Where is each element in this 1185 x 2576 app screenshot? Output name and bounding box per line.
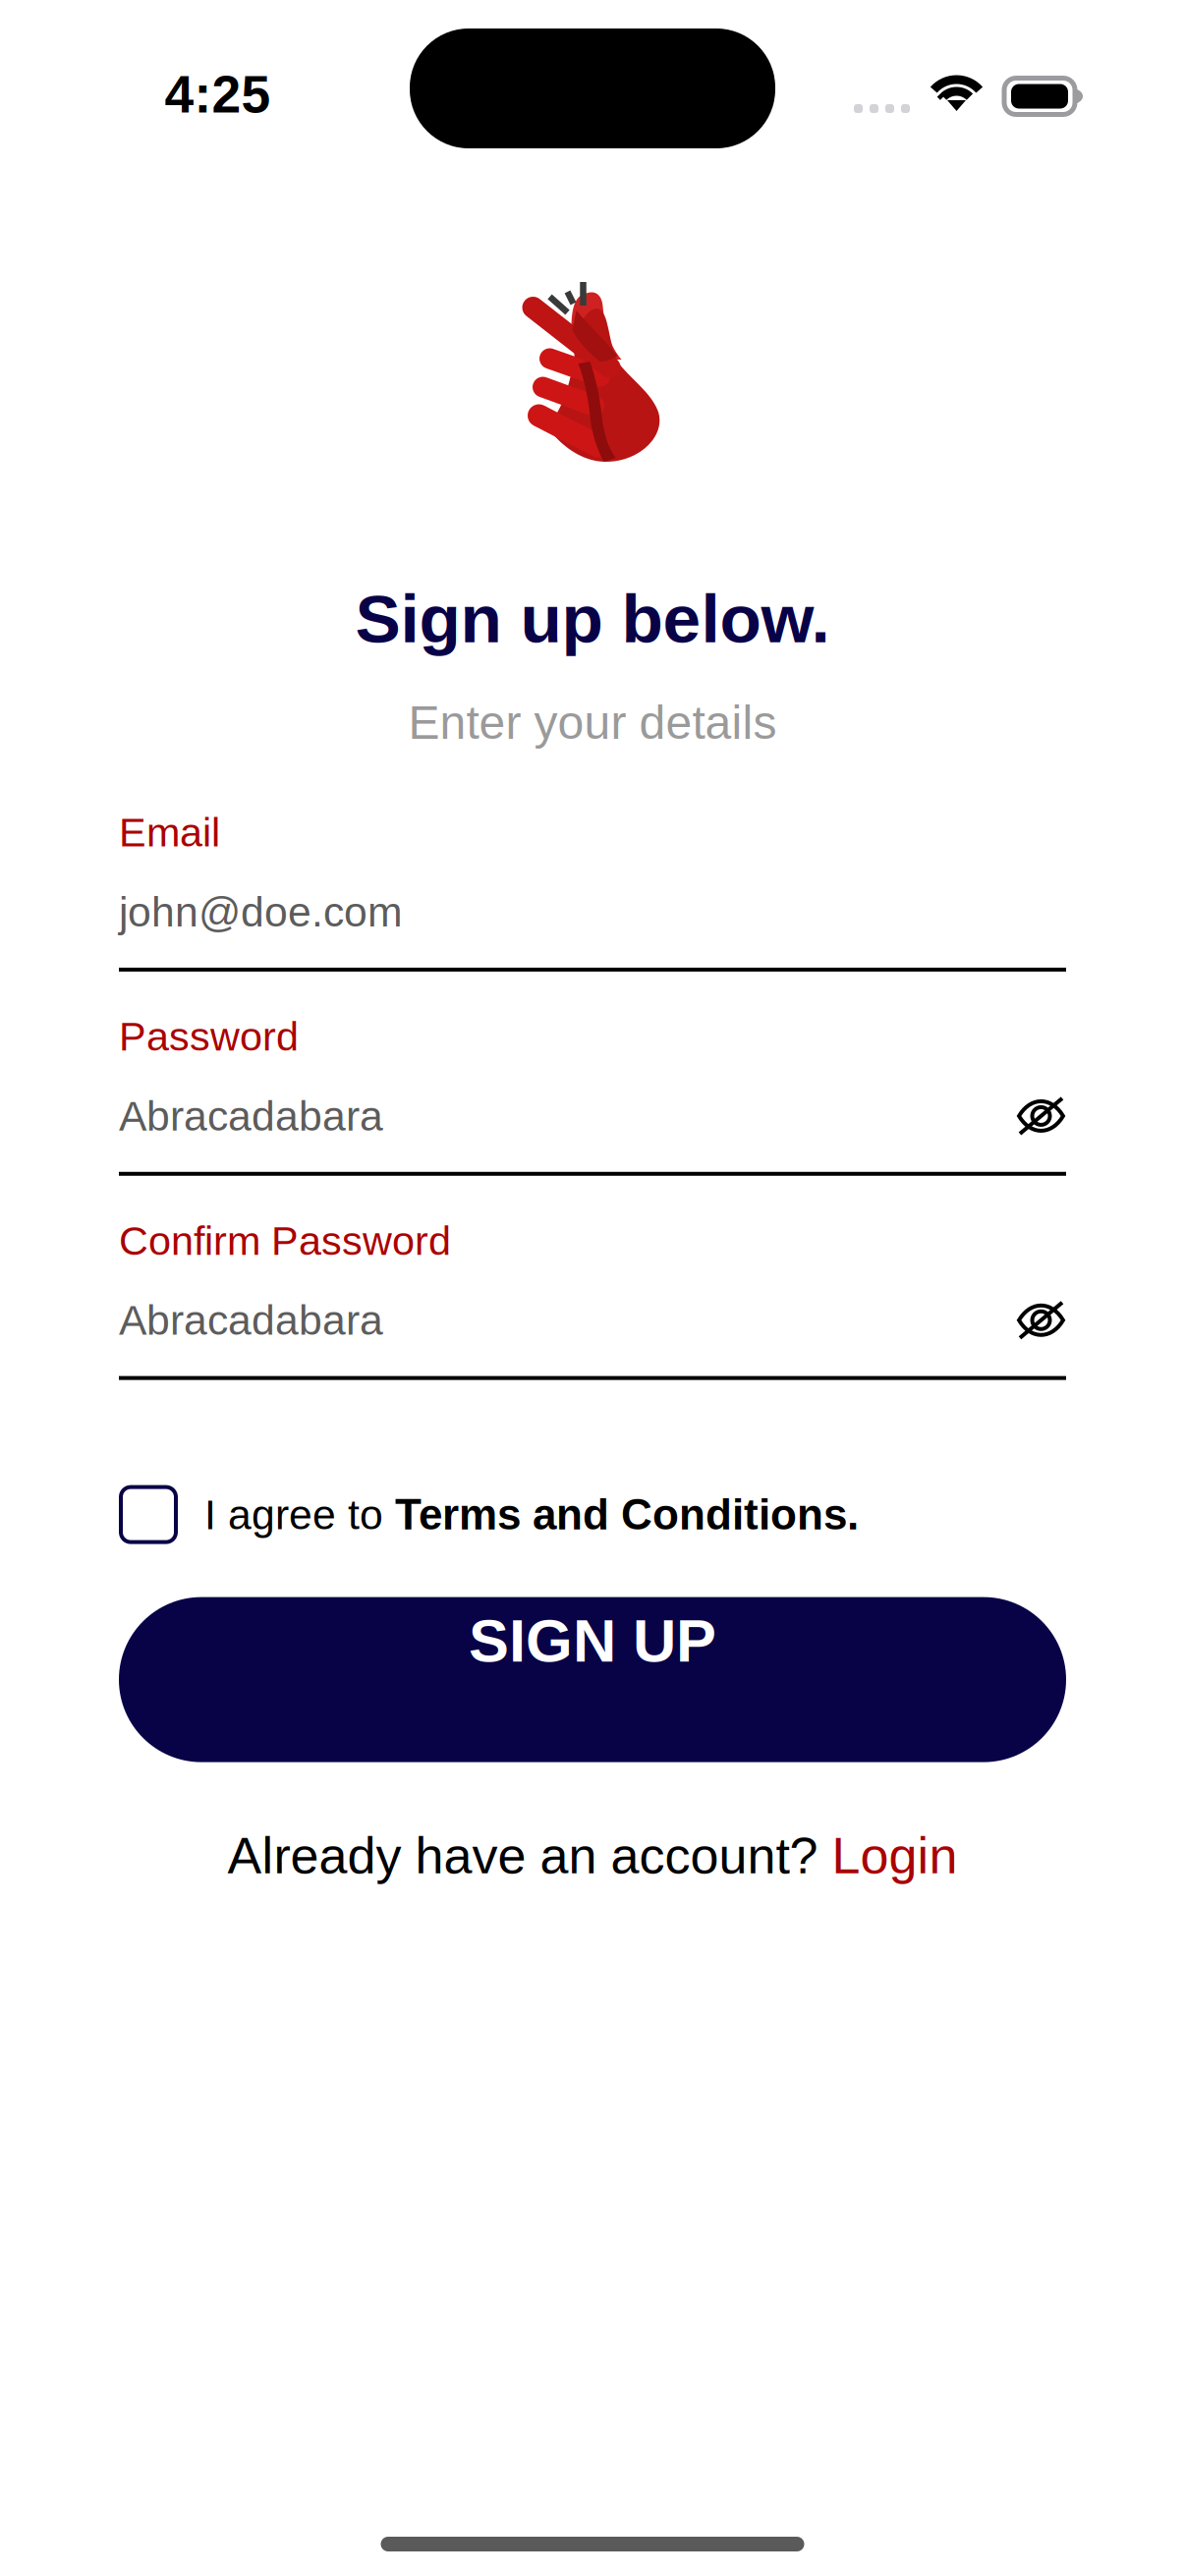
staticText: Sign up below. — [355, 581, 830, 657]
button[interactable]: SIGN UP — [119, 1597, 1066, 1762]
button[interactable]: Already have an account? — [227, 1827, 958, 1884]
staticText: I agree to — [204, 1491, 395, 1538]
staticText: Login — [832, 1827, 958, 1884]
staticText: Enter your details — [408, 696, 777, 749]
staticText: Terms and Conditions. — [395, 1490, 859, 1539]
button[interactable]: I agree to — [0, 1487, 1185, 1542]
staticText: Abracadabara — [119, 1093, 383, 1139]
staticText: 4:25 — [165, 65, 271, 124]
button[interactable]: Toggle password visibility — [996, 1096, 1066, 1136]
staticText: john@doe.com — [119, 888, 403, 935]
staticText: Already have an account? — [227, 1827, 832, 1884]
staticText: SIGN UP — [469, 1607, 716, 1674]
staticText: Password — [119, 1014, 299, 1059]
button[interactable]: Toggle password visibility — [996, 1301, 1066, 1340]
staticText: Email — [119, 810, 220, 855]
staticText: Confirm Password — [119, 1218, 451, 1263]
staticText: Abracadabara — [119, 1297, 383, 1344]
